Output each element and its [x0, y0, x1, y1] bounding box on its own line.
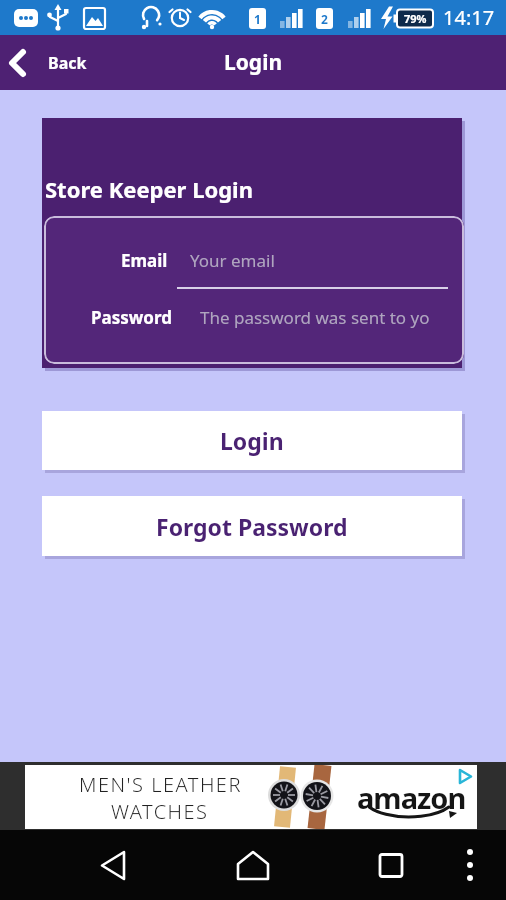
staticText: amazon — [357, 778, 466, 817]
button[interactable]: Back — [0, 45, 95, 81]
staticText: Login — [224, 48, 283, 77]
button[interactable]: Login — [42, 411, 462, 470]
button[interactable] — [367, 848, 415, 884]
staticText: Your email — [190, 249, 275, 271]
button[interactable] — [90, 848, 138, 884]
staticText: Forgot Password — [156, 511, 348, 542]
staticText: MEN'S LEATHER — [79, 771, 242, 798]
button[interactable]: Forgot Password — [42, 496, 462, 556]
button[interactable] — [455, 848, 491, 884]
staticText: 2 — [321, 11, 328, 27]
staticText: Login — [220, 425, 284, 456]
staticText: Password — [91, 306, 172, 328]
staticText: WATCHES — [111, 798, 209, 825]
staticText: Store Keeper Login — [45, 174, 253, 204]
staticText: 1 — [254, 11, 261, 27]
staticText: Email — [121, 249, 168, 271]
staticText: Back — [48, 52, 87, 74]
staticText: 79% — [404, 11, 427, 26]
button[interactable] — [229, 848, 277, 884]
staticText: The password was sent to yo — [200, 306, 430, 328]
button[interactable]: MEN'S LEATHER — [25, 765, 477, 829]
staticText: 14:17 — [443, 4, 495, 31]
